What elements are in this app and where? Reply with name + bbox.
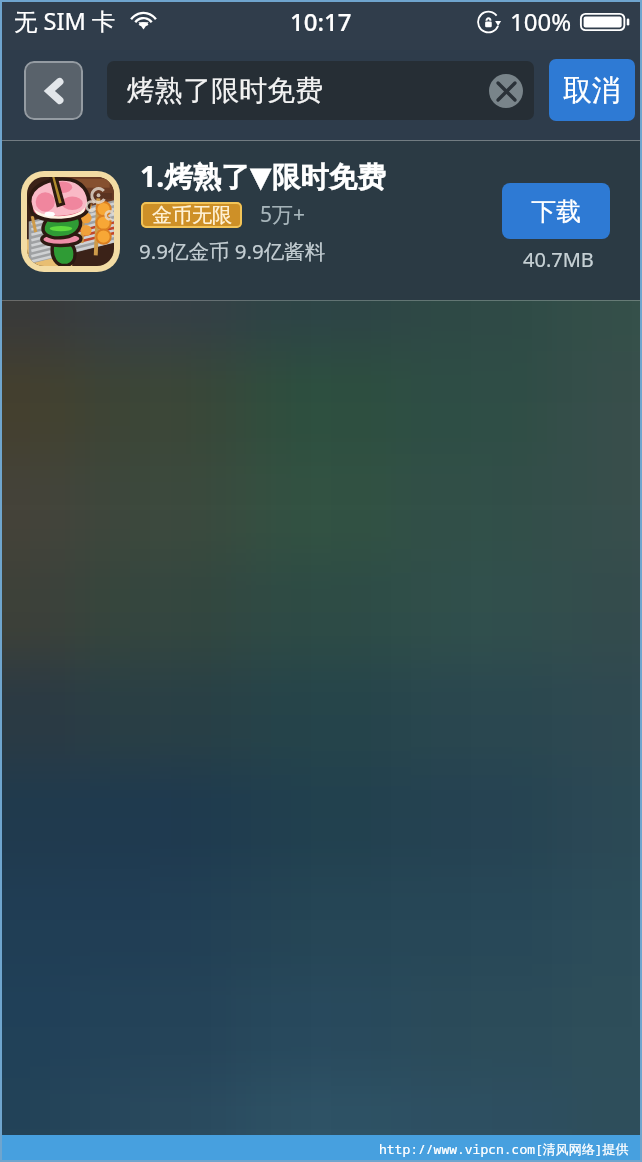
button[interactable]: Back (24, 61, 83, 120)
button[interactable]: 烤熟了限时免费 (107, 61, 534, 120)
staticText: 烤熟了限时免费 (127, 73, 323, 108)
staticText: 40.7MB (523, 246, 594, 273)
staticText: 无 SIM 卡 (14, 5, 116, 37)
staticText: 100% (510, 5, 572, 38)
staticText: 下载 (531, 196, 581, 227)
staticText: 9.9亿金币 9.9亿酱料 (139, 237, 326, 265)
staticText: 5万+ (260, 200, 306, 229)
button[interactable]: 取消 (549, 59, 635, 121)
staticText: http://www.vipcn.com[清风网络]提供 (379, 1140, 629, 1158)
button[interactable]: Clear text (489, 74, 523, 108)
staticText: 10:17 (290, 5, 352, 38)
button[interactable]: 下载 (502, 183, 610, 239)
staticText: 金币无限 (152, 203, 232, 228)
staticText: 1.烤熟了▼限时免费 (140, 157, 386, 196)
staticText: 取消 (563, 72, 621, 109)
button[interactable]: 1.烤熟了▼限时免费 (0, 141, 642, 300)
